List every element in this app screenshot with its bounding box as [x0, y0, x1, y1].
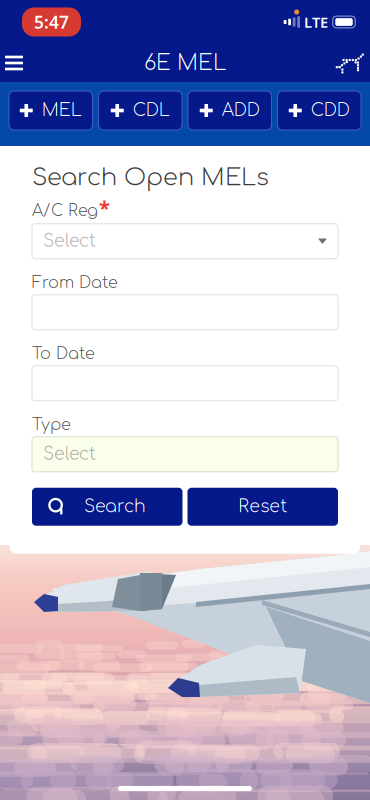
staticText: From Date [32, 274, 118, 292]
button[interactable]: Search [32, 488, 182, 526]
staticText: CDD [311, 101, 350, 120]
button[interactable]: CDD [277, 91, 361, 130]
staticText: ADD [222, 101, 260, 120]
staticText: CDL [133, 101, 170, 120]
staticText: 6E MEL [144, 51, 226, 75]
staticText: LTE [304, 12, 328, 32]
button[interactable]: CDL [98, 91, 182, 130]
button[interactable]: Reset [187, 488, 338, 526]
staticText: Type [32, 416, 71, 434]
staticText: Reset [238, 497, 287, 516]
staticText: To Date [32, 345, 95, 363]
staticText: MEL [42, 101, 82, 120]
button[interactable] [32, 295, 338, 330]
button[interactable]: ADD [188, 91, 271, 130]
staticText: * [99, 194, 110, 221]
staticText: Search Open MELs [32, 164, 269, 191]
button[interactable]: Select [32, 224, 338, 259]
staticText: 5:47 [34, 10, 69, 33]
button[interactable] [32, 366, 338, 401]
button[interactable]: MEL [9, 91, 92, 130]
staticText: Select [43, 232, 96, 251]
staticText: Search [84, 497, 146, 516]
staticText: Select [43, 445, 96, 464]
button[interactable]: Select [32, 437, 338, 472]
button[interactable]: Flights [328, 44, 370, 82]
button[interactable]: Menu [0, 44, 37, 82]
staticText: A/C Reg [32, 202, 98, 220]
